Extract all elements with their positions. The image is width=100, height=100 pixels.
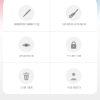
staticText: Clear cache (20, 86, 32, 89)
staticText: One button elimination (62, 23, 86, 26)
button[interactable]: Pro anti-lock (50, 31, 97, 62)
staticText: Pro anti-lock (67, 54, 81, 57)
staticText: High security (67, 86, 81, 89)
button[interactable]: High security (50, 63, 97, 94)
button[interactable]: One button elimination (50, 0, 97, 31)
button[interactable]: Clear cache (3, 63, 50, 94)
button[interactable]: Eye protection (3, 31, 50, 62)
staticText: Monochrome handwriting (14, 23, 39, 26)
button[interactable]: Monochrome handwriting (3, 0, 50, 31)
staticText: Eye protection (19, 54, 33, 57)
